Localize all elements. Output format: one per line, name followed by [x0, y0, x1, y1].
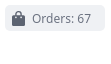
button[interactable]: Orders	[5, 5, 105, 31]
staticText: Orders: 67	[32, 10, 92, 26]
other: Orders	[12, 11, 25, 26]
